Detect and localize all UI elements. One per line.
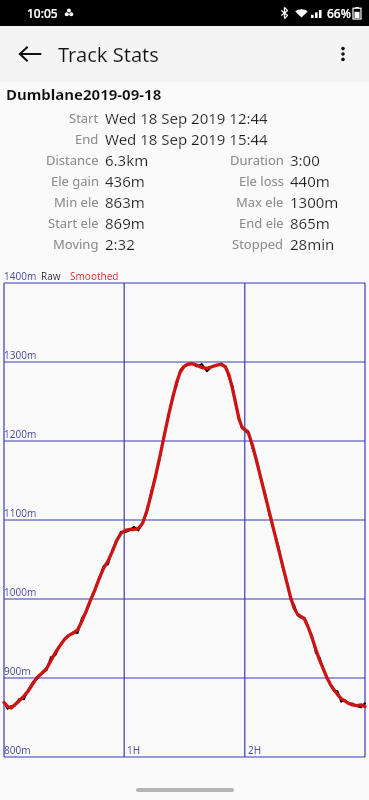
staticText: 1400m	[4, 269, 37, 283]
staticText: 440m	[290, 171, 330, 191]
staticText: 1100m	[4, 506, 37, 520]
staticText: Start	[69, 109, 99, 127]
staticText: 436m	[105, 171, 145, 191]
staticText: Max ele	[236, 193, 284, 211]
staticText: Ele loss	[239, 172, 284, 190]
staticText: 66%	[327, 5, 351, 21]
staticText: 863m	[105, 192, 145, 212]
staticText: Dumblane2019-09-18	[6, 84, 162, 104]
staticText: Raw	[41, 269, 61, 283]
staticText: Duration	[230, 151, 284, 169]
staticText: Ele gain	[51, 172, 99, 190]
staticText: 1200m	[4, 427, 37, 441]
staticText: 28min	[290, 234, 335, 254]
button[interactable]: Back	[9, 33, 51, 75]
staticText: Wed 18 Sep 2019 12:44	[105, 108, 268, 128]
staticText: 2H	[248, 743, 262, 757]
staticText: End	[75, 130, 99, 148]
staticText: 1300m	[4, 348, 37, 362]
staticText: 1300m	[290, 192, 339, 212]
staticText: Distance	[46, 151, 99, 169]
staticText: Smoothed	[70, 269, 119, 283]
staticText: 800m	[4, 743, 31, 757]
staticText: Start ele	[48, 214, 99, 232]
staticText: 869m	[105, 213, 145, 233]
staticText: Wed 18 Sep 2019 15:44	[105, 129, 268, 149]
staticText: 1H	[127, 743, 141, 757]
staticText: Moving	[53, 235, 99, 253]
staticText: Min ele	[54, 193, 99, 211]
staticText: 900m	[4, 664, 31, 678]
staticText: 2:32	[105, 234, 135, 254]
staticText: 865m	[290, 213, 330, 233]
staticText: End ele	[239, 214, 284, 232]
staticText: 6.3km	[105, 150, 149, 170]
staticText: 1000m	[4, 585, 37, 599]
staticText: Stopped	[232, 235, 284, 253]
staticText: 10:05	[27, 5, 58, 21]
staticText: Track Stats	[58, 41, 159, 68]
staticText: 3:00	[290, 150, 320, 170]
button[interactable]: More options	[322, 33, 364, 75]
